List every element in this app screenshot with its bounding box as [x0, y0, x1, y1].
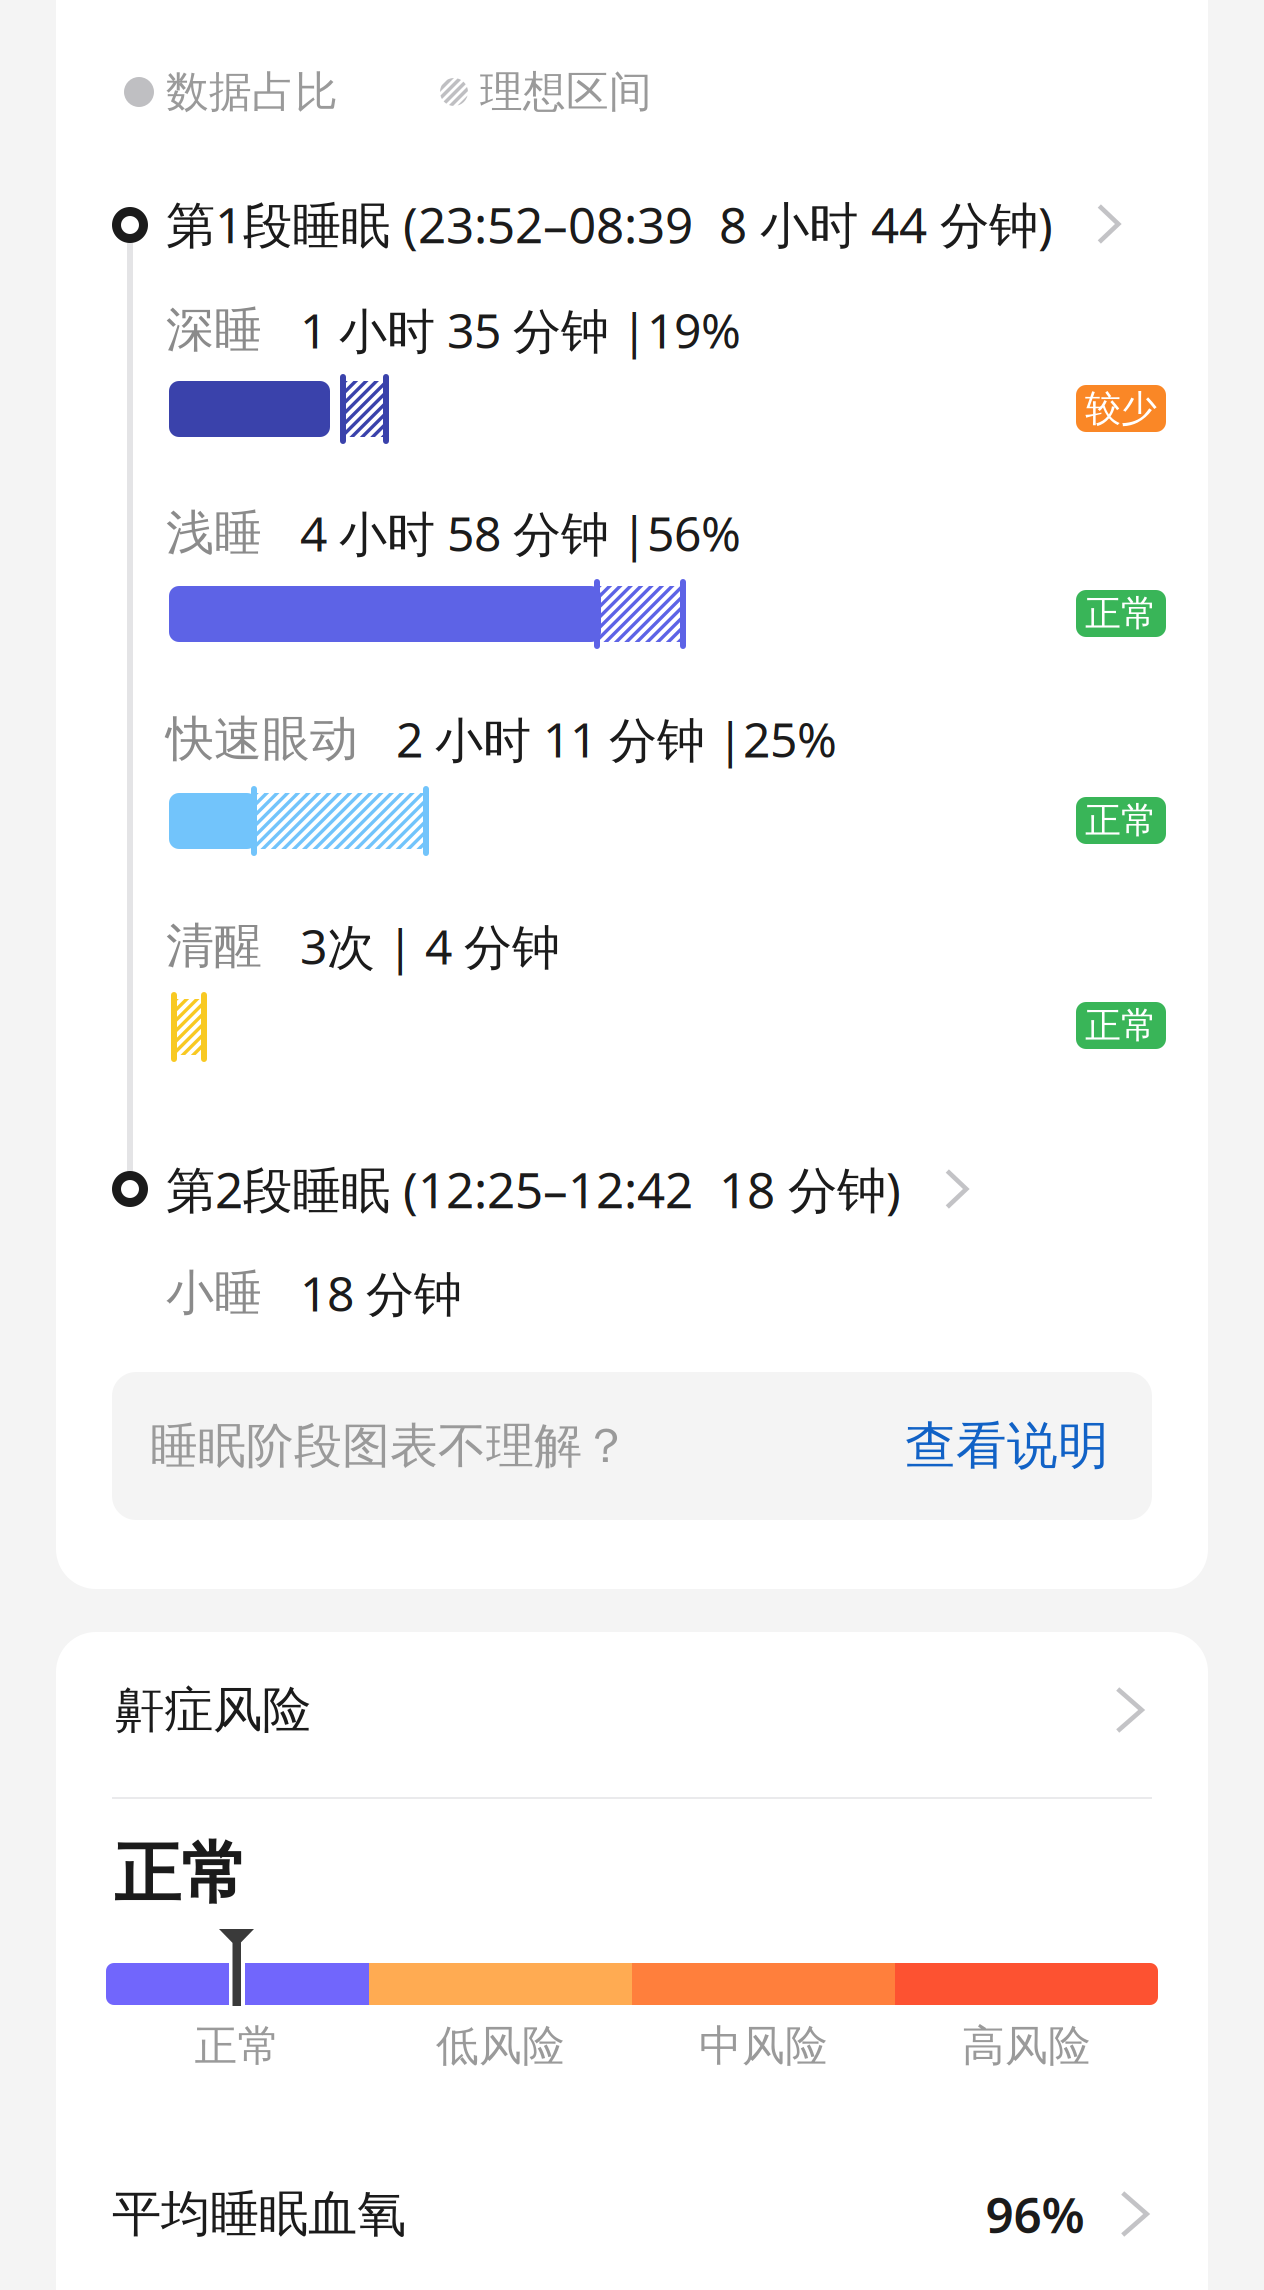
button[interactable]: 第1段睡眠 (23:52–08:39 8 小时 44 分钟): [166, 195, 1166, 253]
staticText: 3次 | 4 分钟: [300, 914, 560, 978]
staticText: 4 小时 58 分钟 |56%: [300, 501, 741, 565]
button[interactable]: 平均睡眠血氧: [56, 2134, 1208, 2290]
staticText: 正常: [1085, 591, 1157, 636]
staticText: 正常: [114, 1833, 248, 1915]
staticText: 正常: [1085, 1003, 1157, 1048]
staticText: 睡眠阶段图表不理解？: [150, 1416, 630, 1475]
button[interactable]: 睡眠阶段图表不理解？: [112, 1372, 1152, 1520]
staticText: 低风险: [436, 2020, 565, 2072]
staticText: 第2段睡眠 (12:25–12:42 18 分钟): [166, 1156, 901, 1222]
staticText: 数据占比: [166, 66, 338, 118]
staticText: 小睡: [166, 1263, 262, 1322]
button[interactable]: 鼾症风险: [56, 1632, 1208, 1788]
staticText: 1 小时 35 分钟 |19%: [300, 298, 741, 362]
staticText: 第1段睡眠 (23:52–08:39 8 小时 44 分钟): [166, 191, 1053, 257]
staticText: 深睡: [166, 300, 262, 359]
staticText: 平均睡眠血氧: [112, 2184, 406, 2244]
staticText: 18 分钟: [300, 1261, 462, 1325]
staticText: 96%: [985, 2181, 1084, 2247]
staticText: 鼾症风险: [115, 1680, 311, 1740]
staticText: 2 小时 11 分钟 |25%: [396, 707, 837, 771]
staticText: 高风险: [962, 2020, 1091, 2072]
staticText: 浅睡: [166, 503, 262, 562]
staticText: 理想区间: [480, 66, 652, 118]
staticText: 较少: [1085, 386, 1157, 431]
staticText: 快速眼动: [166, 709, 358, 768]
button[interactable]: 第2段睡眠 (12:25–12:42 18 分钟): [166, 1160, 1166, 1218]
staticText: 正常: [1085, 798, 1157, 843]
staticText: 清醒: [166, 916, 262, 975]
staticText: 查看说明: [905, 1415, 1109, 1477]
staticText: 正常: [194, 2020, 280, 2072]
staticText: 中风险: [699, 2020, 828, 2072]
